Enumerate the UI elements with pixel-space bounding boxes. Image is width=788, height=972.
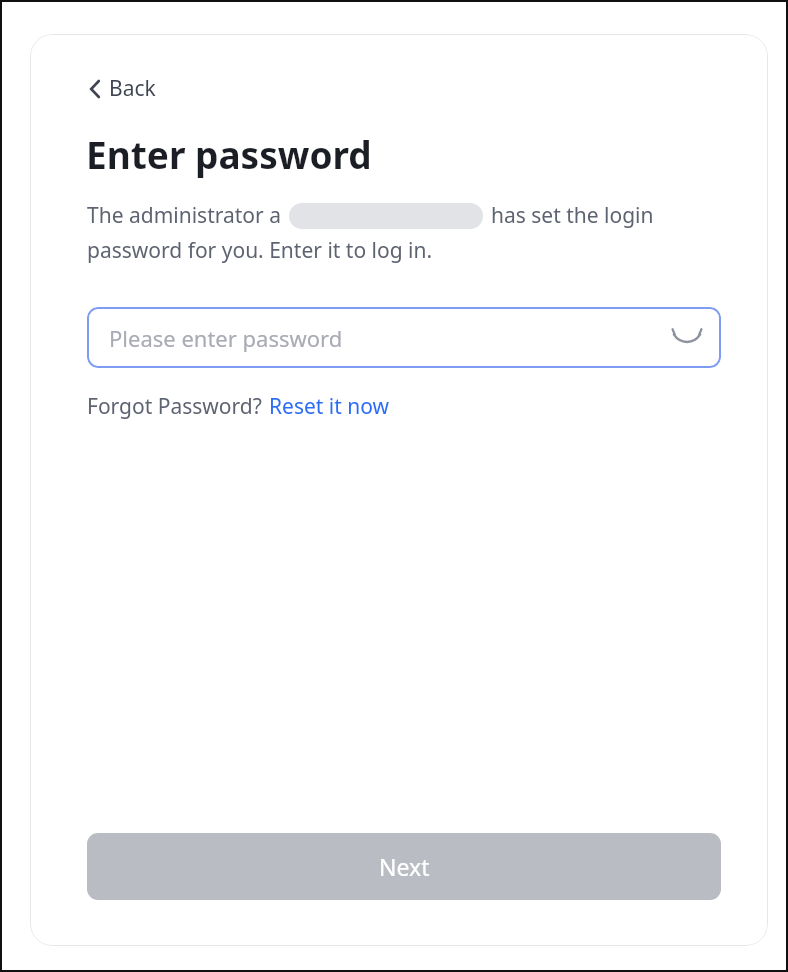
staticText: The administrator a: [87, 201, 281, 230]
button[interactable]: Please enter password: [87, 307, 721, 368]
staticText: Please enter password: [109, 323, 671, 353]
staticText: Reset it now: [269, 392, 390, 421]
button[interactable]: Reset it now: [269, 392, 390, 421]
staticText: has set the login: [491, 201, 654, 230]
staticText: Back: [109, 74, 156, 103]
staticText: password for you. Enter it to log in.: [87, 236, 433, 265]
button[interactable]: Back: [87, 70, 158, 107]
staticText: Forgot Password?: [87, 392, 262, 421]
button[interactable]: Next: [87, 833, 721, 900]
button[interactable]: Show password: [671, 322, 703, 354]
staticText: Next: [379, 851, 430, 882]
staticText: Enter password: [86, 129, 372, 179]
